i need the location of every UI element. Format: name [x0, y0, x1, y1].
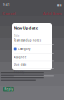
- button[interactable]: Cancel: [2, 11, 15, 16]
- staticText: Priority: [14, 70, 24, 74]
- staticText: Assignee: [14, 55, 27, 59]
- staticText: Team standup notes: [14, 39, 41, 42]
- staticText: New Update: [14, 25, 38, 30]
- staticText: Title: [14, 34, 20, 38]
- button[interactable]: Add Item: [43, 11, 62, 16]
- staticText: Cancel: [2, 11, 15, 16]
- button[interactable]: Reply: [3, 87, 14, 91]
- staticText: Due date: [14, 63, 27, 66]
- staticText: Add Item: [43, 11, 62, 16]
- staticText: 9:41: [3, 3, 10, 7]
- staticText: Category: [18, 47, 30, 51]
- staticText: Reply: [4, 87, 12, 91]
- staticText: ▮▮ ▮: [57, 3, 61, 6]
